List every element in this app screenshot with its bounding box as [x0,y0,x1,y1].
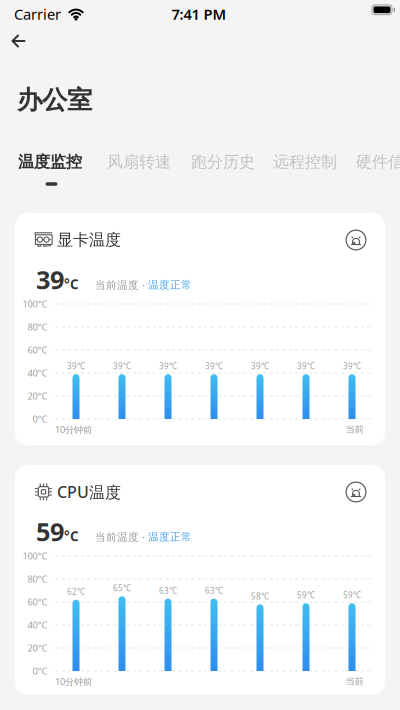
button[interactable]: Alerts [345,229,366,250]
staticText: 60°C [27,596,47,608]
staticText: 80°C [27,321,47,333]
staticText: 100°C [22,550,47,562]
staticText: 温度正常 [148,278,192,291]
staticText: 62°C [67,586,85,597]
staticText: 当前温度 · [95,530,148,544]
staticText: 39°C [297,361,315,371]
staticText: 0°C [32,413,47,425]
staticText: 59°C [36,515,79,548]
staticText: 39°C [251,361,269,371]
button[interactable]: Back [3,26,33,56]
staticText: 硬件信息 [356,152,400,172]
staticText: 10分钟前 [55,675,92,688]
staticText: Carrier [14,4,61,24]
button[interactable]: 温度监控 [18,150,108,174]
staticText: 20°C [27,642,47,654]
staticText: 39°C [113,361,131,371]
staticText: CPU温度 [57,481,121,502]
button[interactable]: 跑分历史 [191,150,281,174]
staticText: 10分钟前 [55,423,92,436]
staticText: 当前 [345,424,363,435]
staticText: 当前 [345,676,363,687]
staticText: 59°C [343,590,361,600]
staticText: 39°C [67,361,85,371]
staticText: 7:41 PM [171,4,226,24]
staticText: 风扇转速 [107,152,171,172]
staticText: 58°C [251,591,269,602]
staticText: 39°C [36,263,79,296]
button[interactable]: 风扇转速 [107,150,197,174]
staticText: 20°C [27,390,47,402]
staticText: 温度正常 [148,530,192,543]
staticText: 远程控制 [273,152,337,172]
button[interactable]: 硬件信息 [356,150,400,174]
staticText: 0°C [32,665,47,677]
staticText: 39°C [205,361,223,371]
staticText: 39°C [159,361,177,371]
staticText: 80°C [27,573,47,585]
staticText: 59°C [297,590,315,600]
staticText: 温度监控 [18,152,82,172]
staticText: 100°C [22,298,47,310]
staticText: 显卡温度 [57,230,121,250]
staticText: 当前温度 · [95,278,148,292]
staticText: 39°C [343,361,361,371]
staticText: 办公室 [17,84,92,115]
staticText: 65°C [113,583,131,593]
staticText: 63°C [159,585,177,596]
staticText: 60°C [27,344,47,356]
button[interactable]: Alerts [345,481,366,502]
staticText: 40°C [27,367,47,379]
staticText: 63°C [205,585,223,596]
staticText: 40°C [27,619,47,631]
staticText: 跑分历史 [191,152,255,172]
button[interactable]: 远程控制 [273,150,363,174]
